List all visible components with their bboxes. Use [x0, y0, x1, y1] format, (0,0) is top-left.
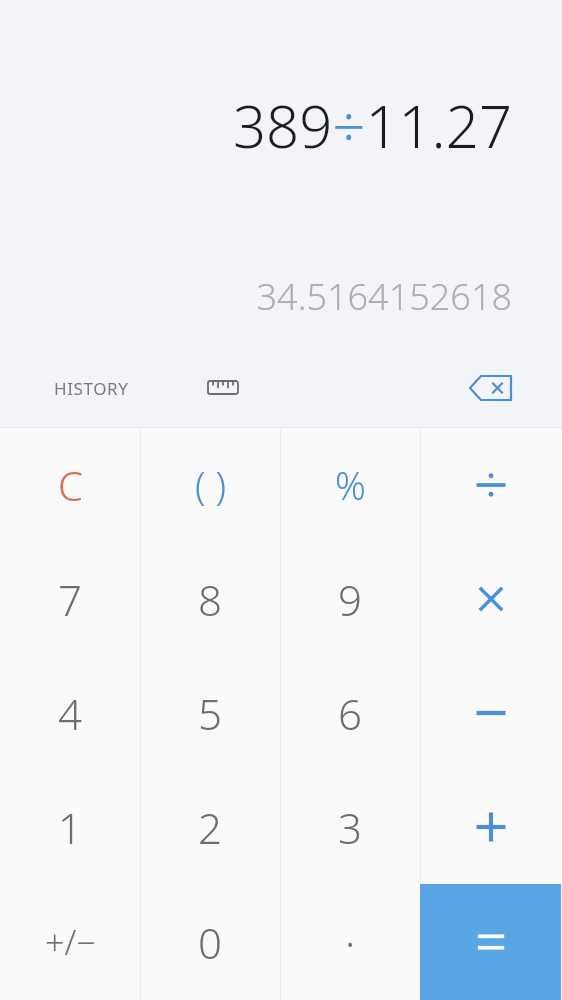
button[interactable]: Unit converter	[200, 365, 246, 411]
button[interactable]: 3	[280, 770, 420, 884]
staticText: HISTORY	[54, 377, 129, 400]
button[interactable]: 9	[280, 542, 420, 656]
button[interactable]: Backspace	[466, 362, 518, 414]
button[interactable]: ·	[280, 884, 420, 1000]
button[interactable]: C	[0, 428, 140, 542]
button[interactable]: 4	[0, 656, 140, 770]
staticText: %	[335, 459, 366, 511]
staticText: 0	[198, 914, 222, 971]
button[interactable]: +/−	[0, 884, 140, 1000]
staticText: 4	[58, 685, 82, 742]
staticText: ·	[345, 914, 356, 971]
button[interactable]: 2	[140, 770, 280, 884]
staticText: 3	[338, 799, 362, 856]
button[interactable]: 6	[280, 656, 420, 770]
button[interactable]: Multiply	[420, 542, 561, 656]
staticText: 1	[58, 799, 82, 856]
button[interactable]: Equals	[420, 884, 561, 1000]
staticText: 5	[198, 685, 222, 742]
staticText: 9	[338, 571, 362, 628]
button[interactable]: %	[280, 428, 420, 542]
staticText: 6	[338, 685, 362, 742]
staticText: ( )	[195, 459, 226, 511]
staticText: C	[58, 458, 83, 512]
button[interactable]: HISTORY	[50, 371, 133, 406]
button[interactable]: 8	[140, 542, 280, 656]
button[interactable]: ( )	[140, 428, 280, 542]
button[interactable]: 5	[140, 656, 280, 770]
staticText: 389÷11.27	[232, 86, 512, 165]
staticText: +/−	[45, 919, 96, 965]
staticText: 34.5164152618	[256, 272, 512, 321]
button[interactable]: 0	[140, 884, 280, 1000]
staticText: 7	[58, 571, 82, 628]
button[interactable]: Divide	[420, 428, 561, 542]
button[interactable]: Minus	[420, 656, 561, 770]
button[interactable]: 1	[0, 770, 140, 884]
button[interactable]: Plus	[420, 770, 561, 884]
button[interactable]: 7	[0, 542, 140, 656]
staticText: 8	[198, 571, 222, 628]
staticText: 2	[198, 799, 222, 856]
